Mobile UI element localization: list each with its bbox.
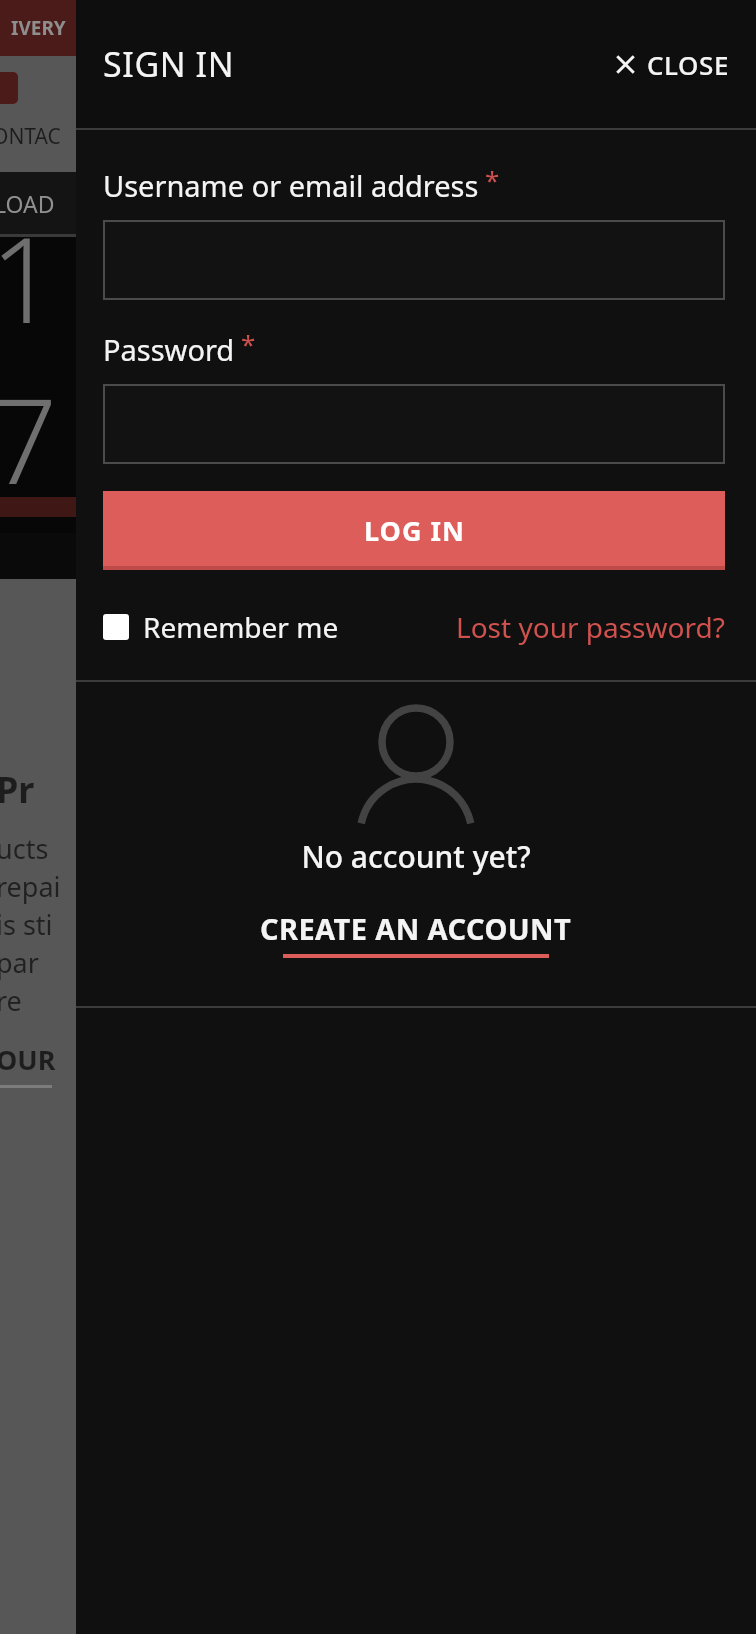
staticText: No account yet? — [301, 836, 531, 877]
staticText: Password — [103, 330, 235, 369]
button[interactable]: Close — [610, 37, 734, 92]
button[interactable]: Lost your password? — [456, 608, 725, 646]
staticText: OUR — [0, 1041, 56, 1078]
staticText: Lost your password? — [456, 608, 725, 646]
button[interactable]: LOG IN — [103, 491, 725, 570]
staticText: Pr — [0, 765, 35, 814]
staticText: * — [485, 162, 500, 197]
button[interactable]: Remember me — [103, 608, 339, 646]
staticText: * — [241, 326, 256, 361]
staticText: SIGN IN — [103, 41, 235, 87]
staticText: ONTAC — [0, 122, 61, 151]
staticText: Username or email address — [103, 166, 479, 205]
staticText: LOG IN — [364, 512, 465, 549]
staticText: CREATE AN ACCOUNT — [260, 909, 572, 948]
button[interactable]: CREATE AN ACCOUNT — [260, 909, 572, 958]
staticText: IVERY — [11, 15, 66, 41]
staticText: CLOSE — [647, 47, 730, 82]
button[interactable] — [103, 384, 725, 464]
staticText: LOAD — [0, 188, 55, 219]
staticText: Remember me — [143, 608, 339, 646]
staticText: 17 — [0, 197, 66, 493]
staticText: ucts repai is sti par re — [0, 830, 61, 1019]
button[interactable] — [103, 220, 725, 300]
